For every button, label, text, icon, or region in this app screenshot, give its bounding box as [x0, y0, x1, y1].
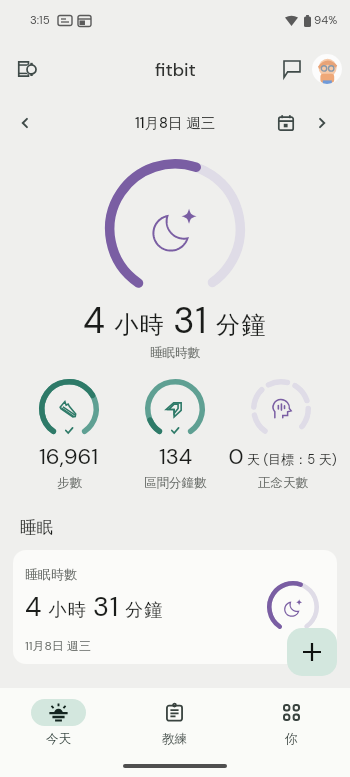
staticText: 你 [285, 731, 298, 747]
staticText: 134 [159, 442, 193, 471]
staticText: 3:15 [30, 13, 50, 28]
button[interactable]: 睡眠時數 [13, 550, 337, 664]
staticText: 11月8日 週三 [135, 114, 216, 133]
button[interactable]: Devices [8, 49, 48, 89]
staticText: 今天 [46, 731, 71, 747]
button[interactable] [39, 379, 99, 439]
button[interactable]: Messages [274, 51, 310, 87]
staticText: 睡眠 [20, 517, 53, 538]
button[interactable]: 你 [233, 699, 350, 747]
button[interactable]: Calendar [270, 107, 302, 139]
staticText: 4 小時 31 分鐘 [25, 589, 164, 624]
staticText: 正念天數 [258, 475, 308, 491]
staticText: 11月8日 週三 [25, 638, 91, 654]
staticText: 4 小時 31 分鐘 [0, 297, 350, 344]
staticText: 睡眠時數 [0, 345, 350, 361]
staticText: 0 天 (目標：5 天) [228, 442, 337, 471]
staticText: fitbit [155, 58, 196, 81]
button[interactable]: 今天 [0, 699, 116, 747]
button[interactable]: Add [287, 628, 337, 676]
staticText: 睡眠時數 [25, 566, 77, 582]
button[interactable]: Next day [306, 107, 338, 139]
staticText: 步數 [57, 475, 82, 491]
button[interactable] [251, 379, 311, 439]
button[interactable] [145, 379, 205, 439]
button[interactable]: 教練 [116, 699, 233, 747]
button[interactable]: Previous day [9, 107, 41, 139]
button[interactable]: Profile [312, 54, 342, 84]
staticText: 94% [314, 13, 338, 28]
staticText: 區間分鐘數 [144, 475, 207, 491]
staticText: 教練 [162, 731, 187, 747]
staticText: 16,961 [39, 442, 99, 471]
